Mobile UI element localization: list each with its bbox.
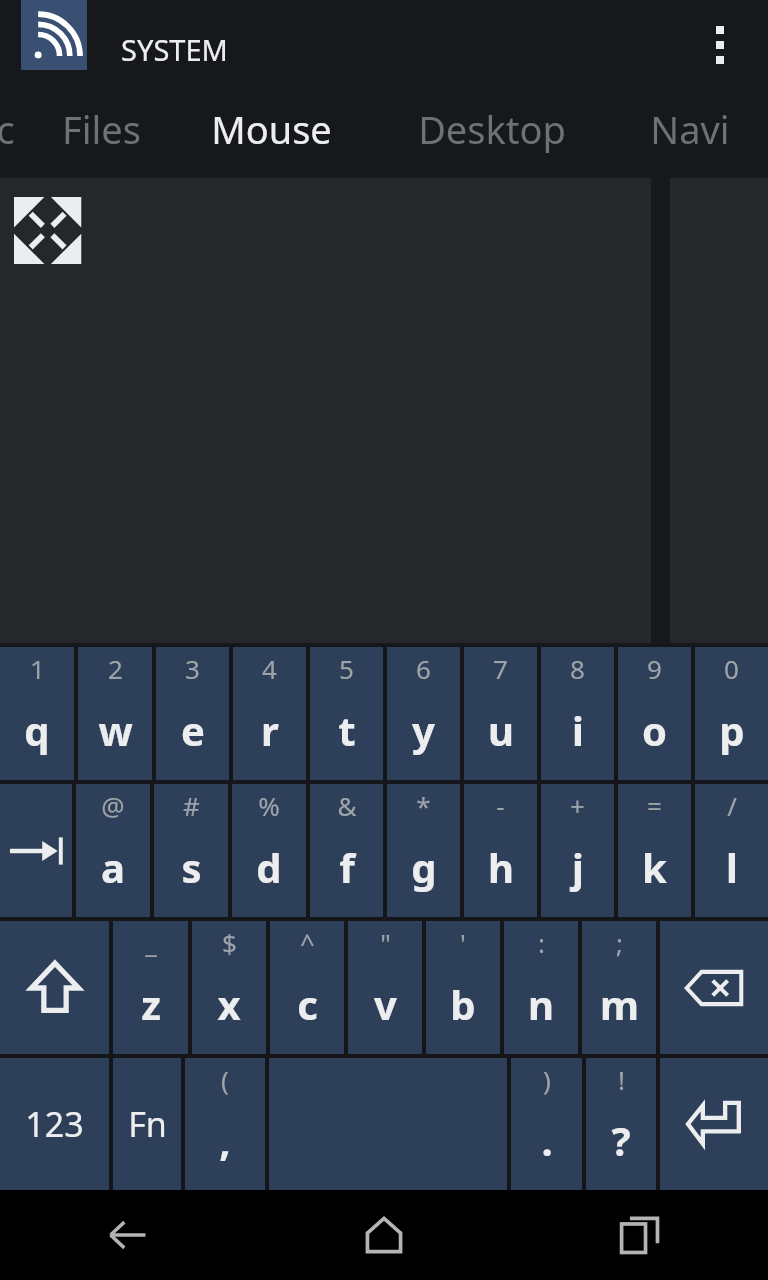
staticText: s (181, 840, 202, 894)
staticText: 2 (108, 651, 123, 686)
button[interactable]: Shift (0, 921, 109, 1054)
staticText: ' (460, 925, 466, 960)
button[interactable]: & (310, 784, 383, 917)
staticText: SYSTEM (121, 30, 228, 69)
button[interactable]: Home (256, 1190, 512, 1280)
button[interactable]: Enter (660, 1058, 768, 1190)
staticText: @ (101, 788, 125, 823)
staticText: 5 (339, 651, 354, 686)
button[interactable]: _ (113, 921, 188, 1054)
staticText: 1 (30, 651, 45, 686)
staticText: ^ (300, 925, 315, 960)
button[interactable]: / (695, 784, 768, 917)
staticText: r (261, 703, 279, 757)
staticText: ? (611, 1113, 631, 1167)
button[interactable]: Fn (113, 1058, 181, 1190)
button[interactable]: * (387, 784, 460, 917)
button[interactable]: % (232, 784, 306, 917)
button[interactable]: 1 (0, 647, 74, 780)
button[interactable]: Toggle fullscreen (14, 197, 90, 267)
button[interactable]: " (348, 921, 422, 1054)
button[interactable]: 123 (0, 1058, 109, 1190)
button[interactable]: 3 (156, 647, 229, 780)
staticText: ) (543, 1062, 551, 1097)
staticText: j (572, 840, 584, 894)
button[interactable]: Back (0, 1190, 256, 1280)
staticText: l (726, 840, 738, 894)
button[interactable]: 5 (310, 647, 383, 780)
button[interactable]: App icon (21, 0, 87, 70)
staticText: q (24, 703, 50, 757)
staticText: 0 (724, 651, 739, 686)
button[interactable]: ! (586, 1058, 656, 1190)
staticText: / (727, 788, 737, 823)
staticText: Fn (128, 1101, 167, 1147)
staticText: k (642, 840, 667, 894)
button[interactable]: 4 (233, 647, 306, 780)
button[interactable]: @ (76, 784, 150, 917)
staticText: = (647, 788, 662, 823)
staticText: " (380, 925, 391, 960)
staticText: $ (222, 925, 237, 960)
staticText: z (141, 977, 161, 1031)
staticText: ( (221, 1062, 229, 1097)
staticText: x (217, 977, 241, 1031)
staticText: p (719, 703, 745, 757)
staticText: m (600, 977, 639, 1031)
button[interactable]: Desktop (418, 103, 566, 155)
button[interactable]: Navi (650, 103, 730, 155)
staticText: c (297, 977, 318, 1031)
staticText: % (258, 788, 280, 823)
staticText: y (412, 703, 435, 757)
staticText: u (488, 703, 514, 757)
staticText: b (450, 977, 476, 1031)
staticText: 7 (493, 651, 508, 686)
button[interactable]: ( (185, 1058, 265, 1190)
staticText: - (496, 788, 505, 823)
button[interactable]: Mouse (211, 103, 332, 155)
staticText: t (338, 703, 356, 757)
staticText: w (98, 703, 133, 757)
button[interactable]: 8 (541, 647, 614, 780)
staticText: n (528, 977, 554, 1031)
button[interactable]: 9 (618, 647, 691, 780)
button[interactable]: ) (511, 1058, 582, 1190)
button[interactable]: 7 (464, 647, 537, 780)
staticText: 3 (185, 651, 200, 686)
button[interactable]: $ (192, 921, 266, 1054)
staticText: _ (145, 925, 157, 960)
staticText: & (337, 788, 357, 823)
button[interactable]: # (154, 784, 228, 917)
button[interactable]: Backspace (660, 921, 768, 1054)
staticText: * (416, 788, 431, 823)
staticText: , (219, 1113, 231, 1167)
staticText: . (541, 1113, 553, 1167)
button[interactable]: Files (62, 103, 141, 155)
button[interactable]: - (464, 784, 537, 917)
button[interactable]: 0 (695, 647, 768, 780)
staticText: h (488, 840, 514, 894)
button[interactable]: Recents (512, 1190, 768, 1280)
staticText: ! (618, 1062, 625, 1097)
staticText: g (411, 840, 437, 894)
button[interactable]: 2 (78, 647, 152, 780)
button[interactable]: Tab (0, 784, 72, 917)
staticText: : (538, 925, 545, 960)
button[interactable]: More options (690, 8, 750, 82)
button[interactable]: + (541, 784, 614, 917)
button[interactable]: ; (582, 921, 656, 1054)
button[interactable]: = (618, 784, 691, 917)
button[interactable]: ^ (270, 921, 344, 1054)
button[interactable]: : (504, 921, 578, 1054)
staticText: a (101, 840, 125, 894)
staticText: o (642, 703, 667, 757)
button[interactable]: ' (426, 921, 500, 1054)
staticText: i (572, 703, 584, 757)
staticText: 4 (262, 651, 277, 686)
button[interactable]: Touchpad (0, 178, 651, 643)
staticText: e (181, 703, 205, 757)
button[interactable]: 6 (387, 647, 460, 780)
staticText: + (570, 788, 585, 823)
